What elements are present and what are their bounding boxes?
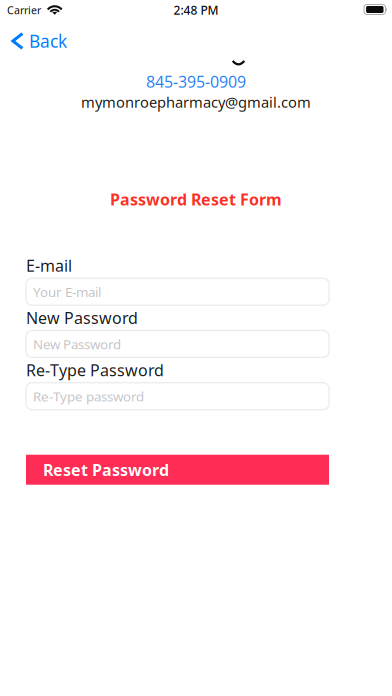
staticText: Re-Type password	[33, 387, 144, 405]
button[interactable]: Re-Type Password	[26, 383, 329, 410]
button[interactable]: Reset Password	[26, 455, 329, 485]
staticText: mymonroepharmacy@gmail.com	[81, 92, 311, 112]
staticText: New Password	[26, 307, 138, 328]
button[interactable]: 845-395-0909	[146, 71, 246, 92]
staticText: 2:48 PM	[173, 2, 218, 18]
button[interactable]: E-mail	[26, 278, 329, 305]
staticText: 845-395-0909	[146, 71, 246, 92]
button[interactable]: Back	[0, 16, 81, 56]
staticText: Carrier	[7, 3, 41, 17]
staticText: E-mail	[26, 255, 72, 276]
staticText: Your E-mail	[33, 283, 101, 301]
button[interactable]: New Password	[26, 330, 329, 357]
staticText: New Password	[33, 335, 121, 353]
staticText: Back	[29, 29, 67, 52]
staticText: Reset Password	[43, 459, 169, 480]
staticText: Password Reset Form	[110, 189, 282, 210]
staticText: Re-Type Password	[26, 359, 164, 381]
